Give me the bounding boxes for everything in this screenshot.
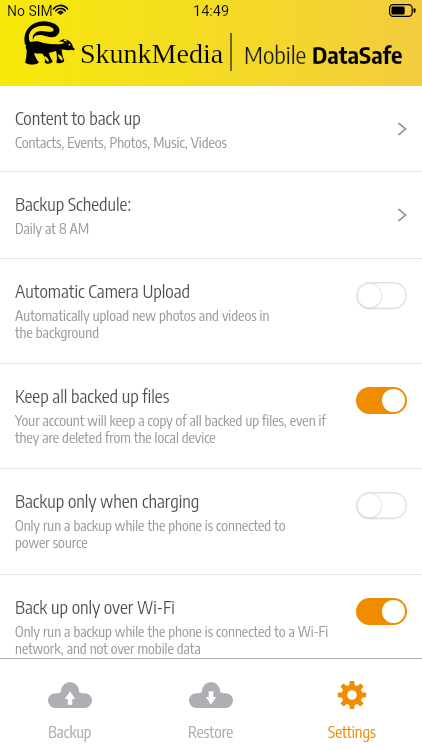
button[interactable]: Toggle on [356,387,407,414]
staticText: Restore [188,722,234,741]
button[interactable]: Restore [140,659,281,750]
staticText: DataSafe [312,39,403,69]
staticText: Automatically upload new photos and vide… [15,306,270,342]
staticText: Contacts, Events, Photos, Music, Videos [15,133,227,151]
staticText: Back up only over Wi-Fi [15,596,175,618]
staticText: Backup Schedule: [15,193,131,215]
staticText: Backup [48,722,92,741]
staticText: SkunkMedia [80,38,224,69]
button[interactable]: Keep all backed up files [0,364,422,468]
button[interactable]: Automatic Camera Upload [0,259,422,363]
button[interactable]: Backup only when charging [0,469,422,574]
button[interactable]: Settings [281,659,422,750]
button[interactable]: Toggle off [356,282,407,309]
button[interactable]: Back up only over Wi-Fi [0,575,422,658]
staticText: Backup only when charging [15,490,200,512]
other: Open [396,205,408,225]
staticText: Mobile [244,39,312,69]
staticText: Only run a backup while the phone is con… [15,622,329,658]
button[interactable]: Toggle on [356,598,407,625]
button[interactable]: Toggle off [356,492,407,519]
other: Open [396,119,408,139]
button[interactable]: Backup [0,659,140,750]
staticText: Keep all backed up files [15,385,170,407]
staticText: Automatic Camera Upload [15,280,191,302]
staticText: Content to back up [15,107,141,129]
staticText: Only run a backup while the phone is con… [15,516,286,552]
button[interactable]: Backup Schedule: [0,172,422,258]
staticText: No SIM [7,3,53,19]
button[interactable]: Content to back up [0,86,422,171]
staticText: Settings [328,722,376,741]
staticText: Your account will keep a copy of all bac… [15,411,326,447]
staticText: 14:49 [193,3,230,20]
staticText: Daily at 8 AM [15,219,90,237]
